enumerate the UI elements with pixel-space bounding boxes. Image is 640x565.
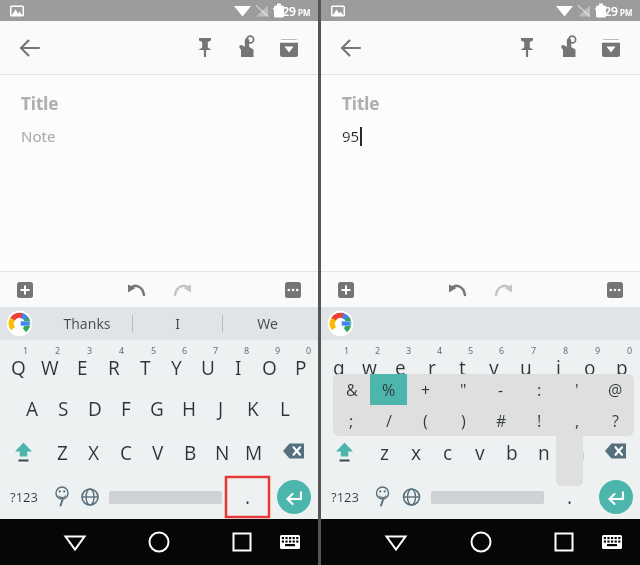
button[interactable]: B [174, 431, 206, 475]
button[interactable]: Add [11, 276, 39, 304]
button[interactable]: Reminder [550, 29, 588, 67]
button[interactable]: y [478, 343, 510, 387]
button[interactable]: X [78, 431, 110, 475]
button[interactable]: Space [104, 475, 226, 519]
button[interactable]: Undo [443, 275, 473, 305]
button[interactable]: S [48, 387, 79, 431]
button[interactable]: More options [601, 276, 629, 304]
button[interactable]: G [141, 387, 173, 431]
button[interactable]: Q [2, 343, 34, 387]
button[interactable]: Emoji [368, 475, 397, 519]
button[interactable]: Hide keyboard [272, 524, 308, 560]
button[interactable]: & [333, 374, 370, 405]
button[interactable]: U [192, 343, 223, 387]
button[interactable]: i [542, 343, 574, 387]
button[interactable]: @ [596, 374, 634, 405]
button[interactable]: Pin [508, 29, 546, 67]
button[interactable]: Redo [167, 275, 197, 305]
button[interactable]: ' [558, 374, 596, 405]
button[interactable]: Recents [222, 522, 262, 562]
button[interactable]: d [400, 387, 431, 431]
button[interactable]: x [400, 431, 432, 475]
button[interactable]: ; [333, 405, 370, 436]
button[interactable]: , [558, 405, 596, 436]
button[interactable]: I [133, 307, 222, 340]
button[interactable]: R [98, 343, 130, 387]
button[interactable]: ? [596, 405, 634, 436]
button[interactable]: # [482, 405, 520, 436]
button[interactable]: h [495, 387, 527, 431]
button[interactable]: Backspace [592, 431, 640, 475]
button[interactable]: ?123 [0, 475, 48, 519]
button[interactable]: Enter [269, 475, 318, 519]
button[interactable]: + [407, 374, 444, 405]
button[interactable]: Change language [397, 475, 426, 519]
button[interactable]: . [226, 475, 269, 519]
button[interactable]: j [527, 387, 559, 431]
button[interactable]: t [447, 343, 478, 387]
button[interactable]: q [323, 343, 354, 387]
button[interactable]: Archive [592, 29, 630, 67]
button[interactable]: Z [47, 431, 78, 475]
button[interactable]: e [385, 343, 416, 387]
button[interactable]: p [606, 343, 638, 387]
button[interactable]: . [548, 475, 591, 519]
button[interactable]: I [223, 343, 254, 387]
button[interactable]: " [444, 374, 482, 405]
button[interactable]: We [223, 307, 312, 340]
button[interactable]: F [110, 387, 141, 431]
button[interactable]: Back [12, 30, 48, 66]
button[interactable]: ! [520, 405, 558, 436]
button[interactable]: % [370, 374, 407, 405]
button[interactable]: n [528, 431, 560, 475]
button[interactable]: V [142, 431, 174, 475]
button[interactable]: P [285, 343, 316, 387]
button[interactable]: Backspace [270, 431, 318, 475]
button[interactable]: D [79, 387, 110, 431]
button[interactable]: T [130, 343, 161, 387]
button[interactable]: ( [407, 405, 444, 436]
button[interactable]: - [482, 374, 520, 405]
button[interactable]: g [463, 387, 495, 431]
button[interactable]: Pin [186, 29, 224, 67]
button[interactable]: Recents [544, 522, 584, 562]
button[interactable]: Back [376, 522, 416, 562]
button[interactable]: L [269, 387, 301, 431]
button[interactable]: N [206, 431, 238, 475]
button[interactable]: f [431, 387, 463, 431]
button[interactable]: k [559, 387, 591, 431]
button[interactable]: c [432, 431, 464, 475]
button[interactable]: Thanks [42, 307, 132, 340]
button[interactable]: o [574, 343, 606, 387]
button[interactable]: Enter [591, 475, 640, 519]
button[interactable]: Emoji [48, 475, 76, 519]
button[interactable]: Shift [0, 431, 47, 475]
button[interactable]: Back [333, 30, 369, 66]
button[interactable]: Archive [270, 29, 308, 67]
button[interactable]: r [416, 343, 447, 387]
button[interactable]: J [205, 387, 237, 431]
button[interactable]: M [238, 431, 270, 475]
button[interactable]: K [237, 387, 269, 431]
button[interactable]: W [34, 343, 66, 387]
button[interactable]: ?123 [321, 475, 368, 519]
button[interactable]: ) [444, 405, 482, 436]
button[interactable]: C [110, 431, 142, 475]
button[interactable]: H [173, 387, 205, 431]
button[interactable]: a [338, 387, 369, 431]
button[interactable]: Space [426, 475, 548, 519]
button[interactable]: Change language [76, 475, 104, 519]
button[interactable]: Reminder [228, 29, 266, 67]
button[interactable]: A [17, 387, 48, 431]
button[interactable]: Shift [321, 431, 368, 475]
button[interactable]: Home [461, 522, 501, 562]
button[interactable]: Add [332, 276, 360, 304]
button[interactable]: Home [139, 522, 179, 562]
button[interactable]: Redo [488, 275, 518, 305]
button[interactable]: z [368, 431, 400, 475]
button[interactable]: Y [161, 343, 192, 387]
button[interactable]: s [369, 387, 400, 431]
button[interactable]: O [254, 343, 285, 387]
button[interactable]: / [370, 405, 407, 436]
button[interactable]: E [66, 343, 98, 387]
